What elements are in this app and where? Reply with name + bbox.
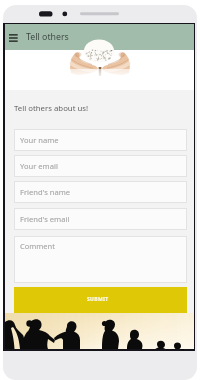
- button[interactable]: Your email: [14, 155, 187, 177]
- staticText: SUBMIT: [87, 296, 109, 303]
- staticText: Tell others: [26, 31, 69, 43]
- button[interactable]: Open navigation menu: [5, 24, 194, 50]
- staticText: Tell others about us!: [14, 103, 89, 114]
- button[interactable]: Open navigation menu: [9, 33, 18, 42]
- button[interactable]: Your name: [14, 129, 187, 151]
- staticText: Friend's email: [20, 214, 70, 224]
- button[interactable]: Friend's email: [14, 208, 187, 230]
- button[interactable]: Friend's name: [14, 181, 187, 203]
- staticText: Your email: [20, 161, 58, 171]
- button[interactable]: Comment: [14, 236, 187, 283]
- button[interactable]: SUBMIT: [14, 287, 187, 313]
- staticText: Comment: [20, 241, 55, 251]
- staticText: Your name: [20, 135, 59, 145]
- staticText: Friend's name: [20, 187, 71, 197]
